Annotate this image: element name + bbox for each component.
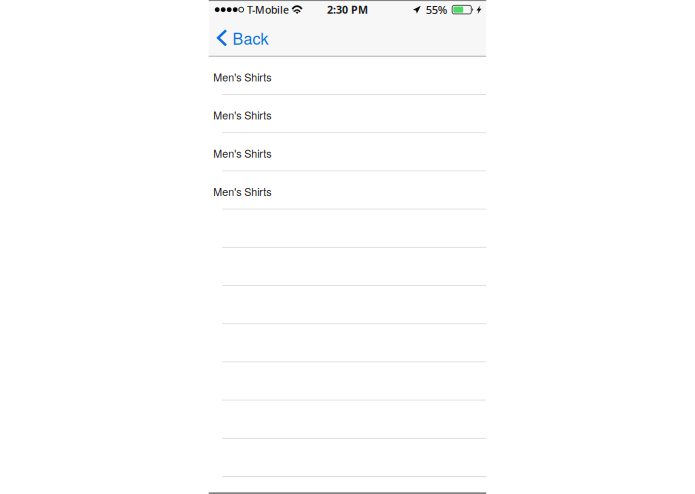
staticText: T-Mobile [247, 3, 289, 17]
staticText: Men's Shirts [213, 107, 271, 123]
staticText: Men's Shirts [213, 184, 271, 199]
staticText: Men's Shirts [213, 69, 271, 84]
button[interactable]: Back [209, 17, 276, 58]
staticText: Back [232, 26, 268, 49]
staticText: 2:30 PM [327, 2, 368, 17]
button[interactable]: Men's Shirts [209, 95, 486, 133]
button[interactable]: Men's Shirts [209, 133, 486, 171]
button[interactable]: Men's Shirts [209, 57, 486, 95]
staticText: 55% [426, 2, 448, 17]
button[interactable]: Men's Shirts [209, 171, 486, 210]
staticText: Men's Shirts [213, 146, 271, 161]
